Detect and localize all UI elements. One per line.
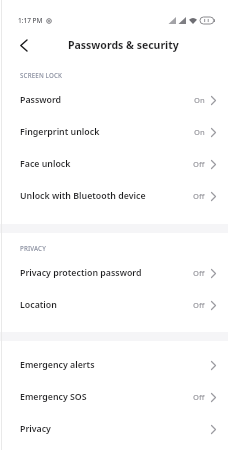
button[interactable]: Fingerprint unlock bbox=[0, 116, 228, 148]
staticText: On bbox=[194, 95, 205, 105]
button[interactable]: Unlock with Bluetooth device bbox=[0, 180, 228, 212]
button[interactable]: Face unlock bbox=[0, 148, 228, 180]
button[interactable]: Emergency SOS bbox=[0, 381, 228, 413]
staticText: Privacy bbox=[20, 423, 51, 435]
button[interactable]: Privacy protection password bbox=[0, 257, 228, 289]
button[interactable]: Password bbox=[0, 84, 228, 116]
staticText: Off bbox=[193, 191, 205, 201]
staticText: Emergency alerts bbox=[20, 359, 95, 371]
button[interactable]: Privacy bbox=[0, 413, 228, 445]
button[interactable]: Location bbox=[0, 289, 228, 321]
staticText: Off bbox=[193, 268, 205, 278]
button[interactable] bbox=[14, 36, 32, 54]
staticText: Unlock with Bluetooth device bbox=[20, 190, 146, 202]
staticText: Privacy protection password bbox=[20, 267, 142, 279]
staticText: Off bbox=[193, 392, 205, 402]
staticText: On bbox=[194, 127, 205, 137]
staticText: PRIVACY bbox=[20, 244, 46, 252]
staticText: Password bbox=[20, 94, 62, 106]
staticText: SCREEN LOCK bbox=[20, 71, 63, 79]
staticText: Fingerprint unlock bbox=[20, 126, 100, 138]
staticText: Face unlock bbox=[20, 158, 71, 170]
staticText: 1:17 PM bbox=[18, 16, 43, 25]
button[interactable]: Emergency alerts bbox=[0, 349, 228, 381]
staticText: Passwords & security bbox=[68, 38, 179, 52]
staticText: Off bbox=[193, 159, 205, 169]
staticText: Location bbox=[20, 299, 57, 311]
staticText: Off bbox=[193, 300, 205, 310]
staticText: Emergency SOS bbox=[20, 391, 87, 403]
